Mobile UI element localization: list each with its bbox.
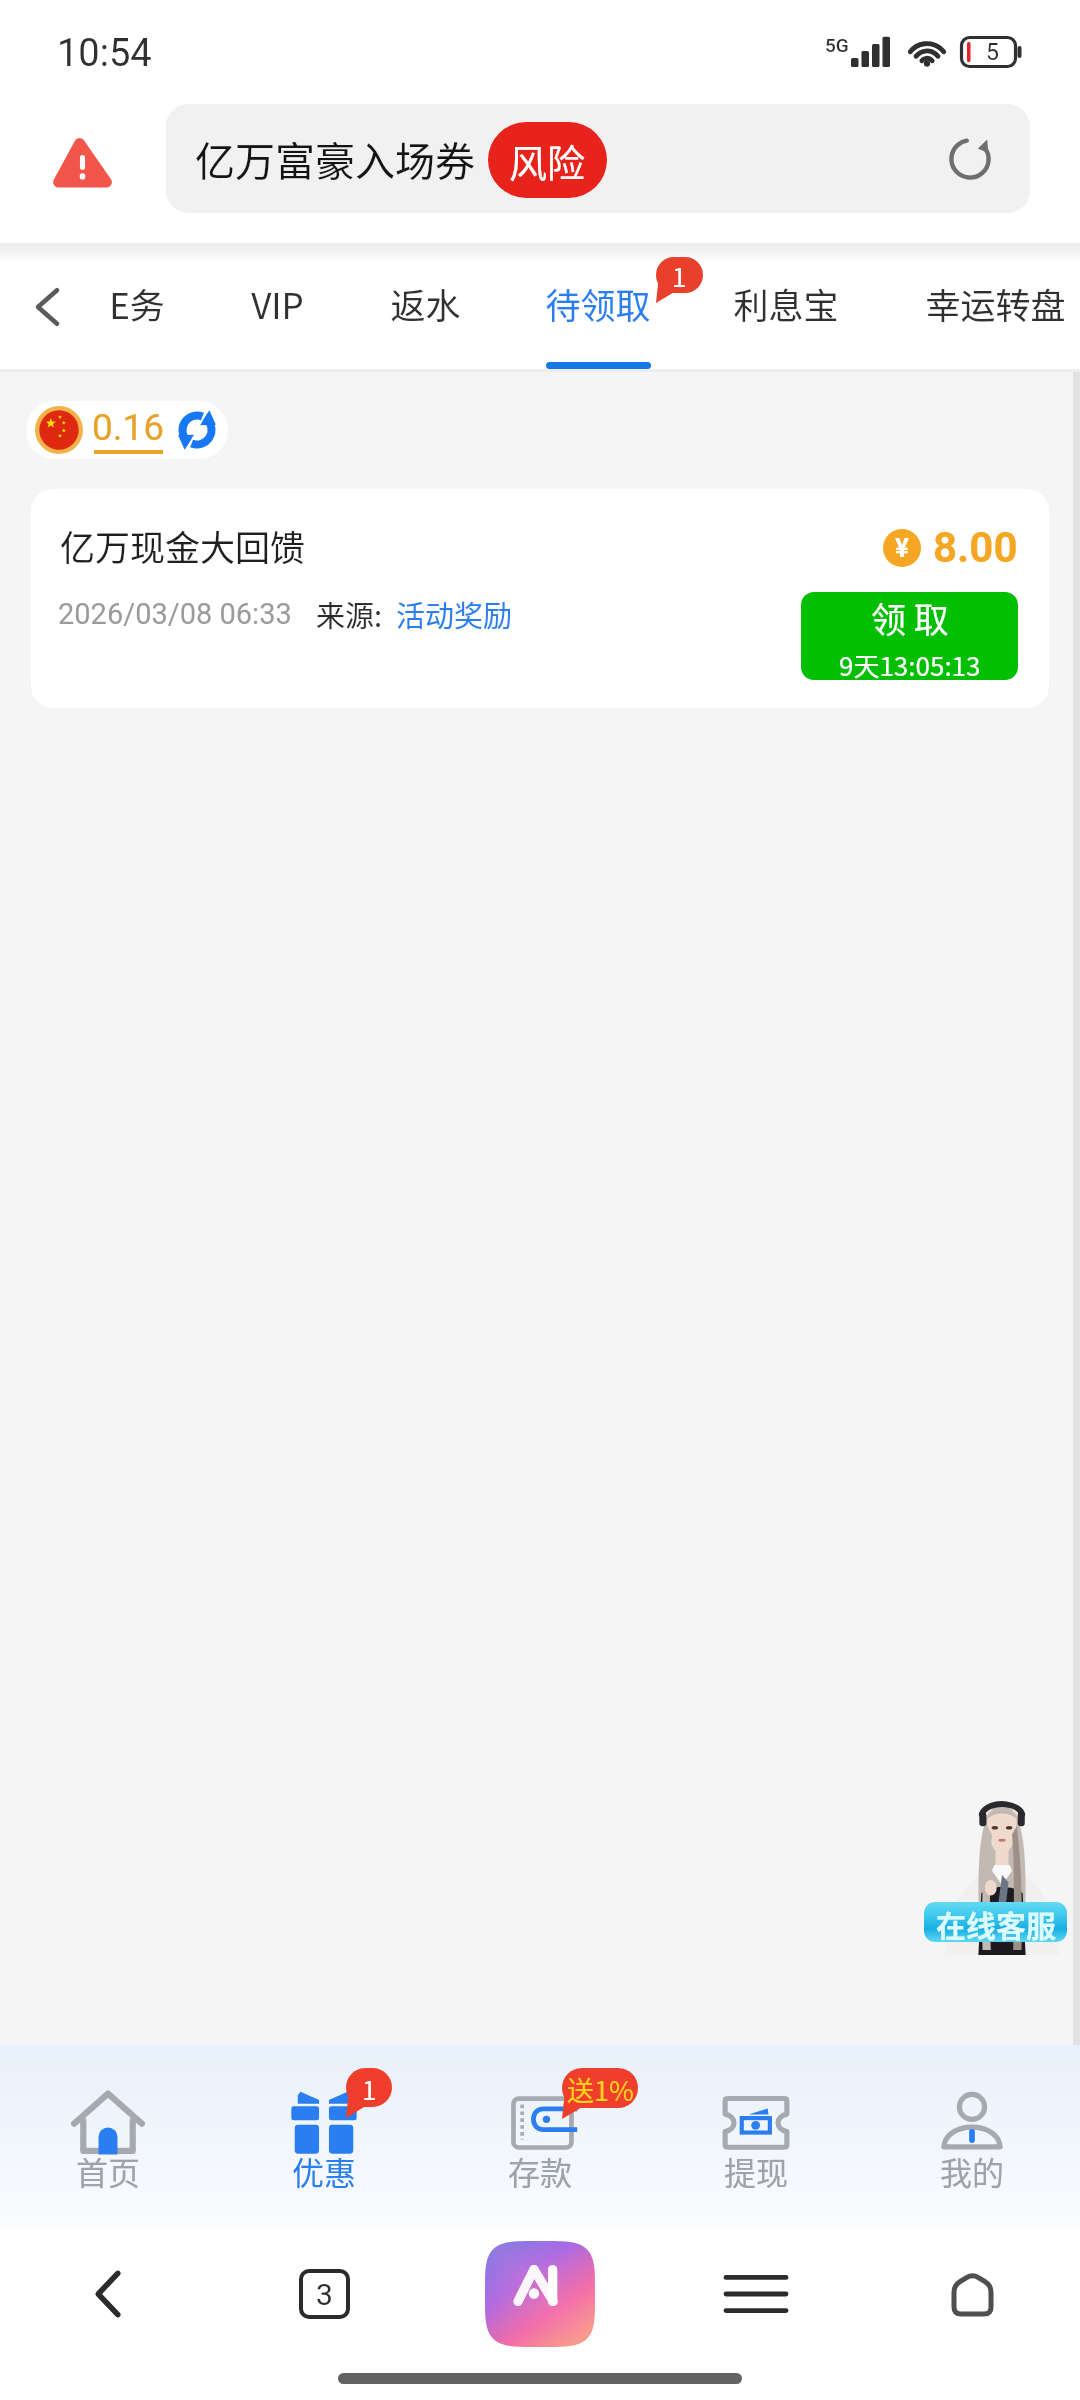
button[interactable]: 首页 (0, 2045, 216, 2227)
button[interactable]: 亿万富豪入场券 (166, 104, 1030, 213)
staticText: 亿万现金大回馈 (60, 520, 306, 571)
staticText: 首页 (76, 2148, 141, 2194)
button[interactable]: E务 (27, 243, 247, 372)
staticText: 待领取 (545, 278, 651, 329)
button[interactable]: 送1% (432, 2045, 648, 2227)
staticText: 来源: (316, 593, 383, 635)
other: Refresh balance (175, 408, 219, 452)
button[interactable]: Tabs (216, 2230, 432, 2358)
staticText: ¥ (895, 533, 909, 563)
button[interactable]: Home (864, 2230, 1080, 2358)
button[interactable]: Back (0, 2230, 216, 2358)
button[interactable]: Back (0, 243, 96, 372)
button[interactable]: Assistant (432, 2230, 648, 2358)
button[interactable]: VIP (167, 243, 387, 372)
staticText: 优惠 (292, 2148, 357, 2194)
other: Refresh (947, 136, 993, 182)
button[interactable]: 提现 (648, 2045, 864, 2227)
button[interactable]: 领 取 (801, 592, 1018, 680)
staticText: 2026/03/08 06:33 (58, 597, 292, 631)
staticText: 10:54 (57, 31, 152, 76)
staticText: 存款 (508, 2148, 573, 2194)
button[interactable]: 亿万现金大回馈 (31, 489, 1049, 708)
button[interactable]: 我的 (864, 2045, 1080, 2227)
staticText: 风险 (509, 133, 586, 188)
staticText: 8.00 (933, 523, 1018, 572)
staticText: 我的 (940, 2148, 1005, 2194)
staticText: 幸运转盘 (925, 278, 1066, 329)
staticText: 5G (825, 34, 849, 56)
button[interactable]: 待领取 (488, 243, 708, 372)
button[interactable]: 返水 (315, 243, 535, 372)
button[interactable]: 利息宝 (676, 243, 896, 372)
button[interactable]: 0.16 (26, 401, 228, 459)
staticText: 9天13:05:13 (839, 646, 981, 680)
button[interactable]: Menu (648, 2230, 864, 2358)
staticText: 利息宝 (733, 278, 839, 329)
staticText: 5 (986, 39, 999, 66)
staticText: VIP (251, 278, 304, 329)
staticText: 亿万富豪入场券 (195, 130, 475, 188)
staticText: 3 (316, 2277, 333, 2312)
staticText: 在线客服 (936, 1902, 1056, 1942)
other: Warning (56, 141, 109, 188)
staticText: 返水 (390, 278, 461, 329)
staticText: E务 (109, 278, 165, 329)
staticText: 1 (672, 257, 687, 295)
staticText: 领 取 (871, 592, 949, 643)
button[interactable]: 1 (216, 2045, 432, 2227)
staticText: 送1% (567, 2070, 634, 2109)
button[interactable]: Online customer service (935, 1790, 1080, 2010)
staticText: 0.16 (92, 406, 165, 449)
staticText: 1 (362, 2070, 377, 2108)
button[interactable]: 幸运转盘 (885, 243, 1080, 372)
staticText: 提现 (724, 2148, 789, 2194)
staticText: 活动奖励 (396, 593, 513, 635)
